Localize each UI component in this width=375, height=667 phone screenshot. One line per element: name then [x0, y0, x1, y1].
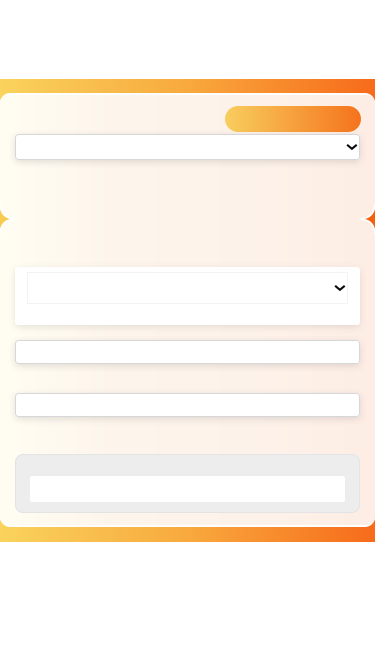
button[interactable]: Text field	[15, 340, 360, 364]
button[interactable]: Choose an option	[15, 134, 360, 160]
button[interactable]: Second text field	[15, 393, 360, 417]
button[interactable]: Continue	[225, 106, 361, 132]
button[interactable]: Choose a second option	[15, 267, 360, 325]
button[interactable]: Entry field	[15, 454, 360, 502]
